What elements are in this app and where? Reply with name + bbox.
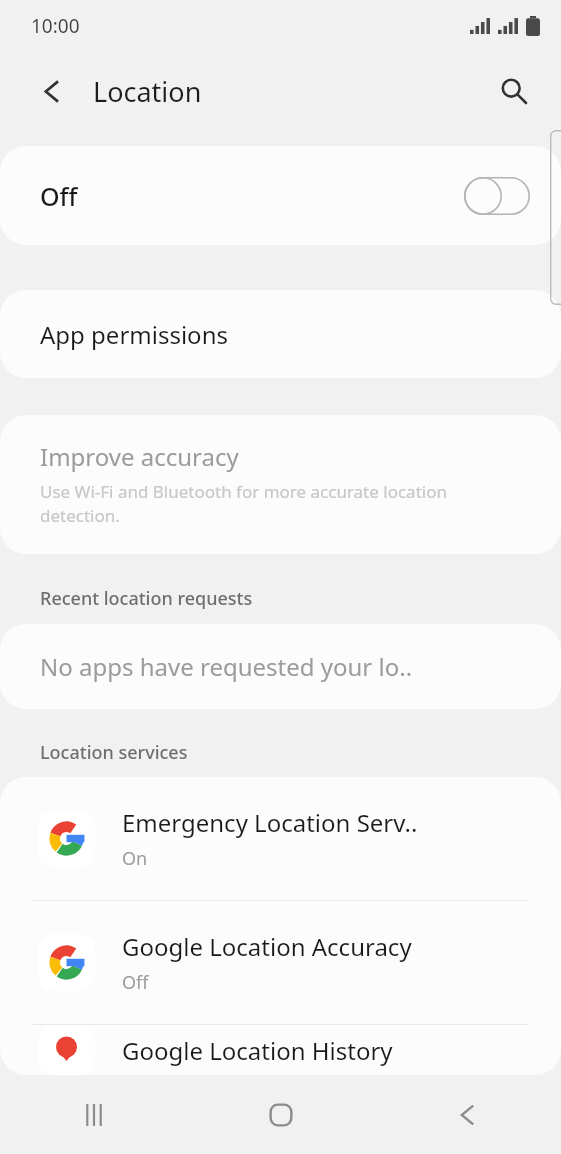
button[interactable]: Recent apps	[0, 1075, 187, 1154]
staticText: Recent location requests	[40, 586, 253, 611]
button[interactable]: Improve accuracy	[0, 415, 561, 554]
button[interactable]: Search	[488, 65, 540, 117]
staticText: Google Location Accuracy	[122, 930, 412, 963]
button[interactable]: Home	[187, 1075, 374, 1154]
staticText: Off	[122, 970, 149, 995]
staticText: Emergency Location Serv..	[122, 806, 418, 839]
staticText: No apps have requested your lo..	[40, 650, 413, 683]
button[interactable]: Back	[26, 65, 78, 117]
button[interactable]: Google Location History	[0, 1025, 561, 1075]
staticText: On	[122, 846, 148, 871]
staticText: Off	[40, 179, 78, 213]
staticText: Location	[93, 73, 202, 110]
staticText: App permissions	[40, 318, 228, 351]
staticText: Google Location History	[122, 1034, 393, 1067]
button[interactable]: No apps have requested your lo..	[0, 624, 561, 709]
button[interactable]: Emergency Location Serv..	[0, 777, 561, 900]
button[interactable]: Off	[0, 146, 561, 245]
staticText: Improve accuracy	[40, 440, 239, 473]
button[interactable]: Back	[374, 1075, 561, 1154]
staticText: Location services	[40, 740, 188, 765]
button[interactable]: App permissions	[0, 290, 561, 378]
staticText: 10:00	[31, 13, 80, 39]
button[interactable]: Google Location Accuracy	[0, 901, 561, 1024]
staticText: Use Wi-Fi and Bluetooth for more accurat…	[40, 480, 525, 527]
